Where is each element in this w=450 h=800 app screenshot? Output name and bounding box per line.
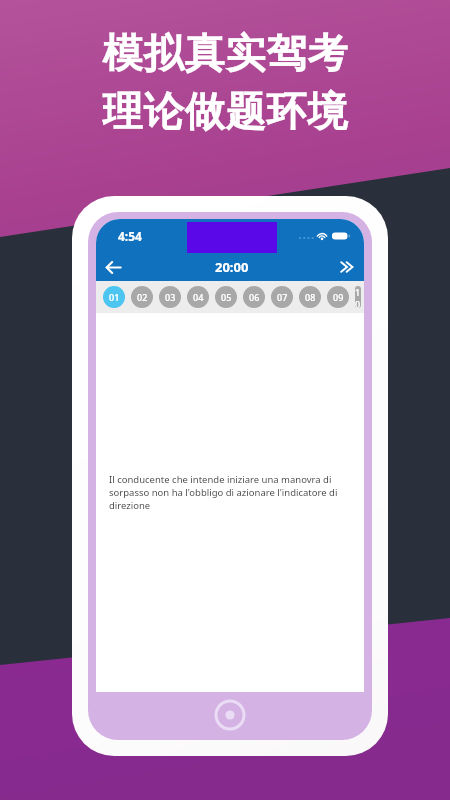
staticText: 10 <box>355 286 361 308</box>
staticText: 02 <box>137 291 148 303</box>
staticText: 01 <box>109 291 120 303</box>
button[interactable]: 09 <box>327 286 349 308</box>
staticText: 03 <box>165 291 176 303</box>
staticText: 06 <box>249 291 260 303</box>
staticText: 4:54 <box>118 228 142 244</box>
button[interactable]: 04 <box>187 286 209 308</box>
staticText: 04 <box>193 291 204 303</box>
button[interactable]: 07 <box>271 286 293 308</box>
staticText: 20:00 <box>215 258 249 276</box>
staticText: 模拟真实驾考 <box>102 28 348 78</box>
button[interactable]: 01 <box>103 286 125 308</box>
staticText: 09 <box>333 291 344 303</box>
button[interactable]: 10 <box>355 286 361 308</box>
staticText: 理论做题环境 <box>102 86 348 136</box>
staticText: Il conducente che intende iniziare una m… <box>109 473 348 512</box>
button[interactable]: Back <box>96 253 130 281</box>
button[interactable]: 02 <box>131 286 153 308</box>
button[interactable]: 05 <box>215 286 237 308</box>
button[interactable]: 08 <box>299 286 321 308</box>
button[interactable]: Home <box>215 700 245 730</box>
staticText: 05 <box>221 291 232 303</box>
button[interactable]: Next <box>330 253 364 281</box>
button[interactable]: 06 <box>243 286 265 308</box>
staticText: 07 <box>277 291 288 303</box>
button[interactable]: 03 <box>159 286 181 308</box>
staticText: 08 <box>305 291 316 303</box>
